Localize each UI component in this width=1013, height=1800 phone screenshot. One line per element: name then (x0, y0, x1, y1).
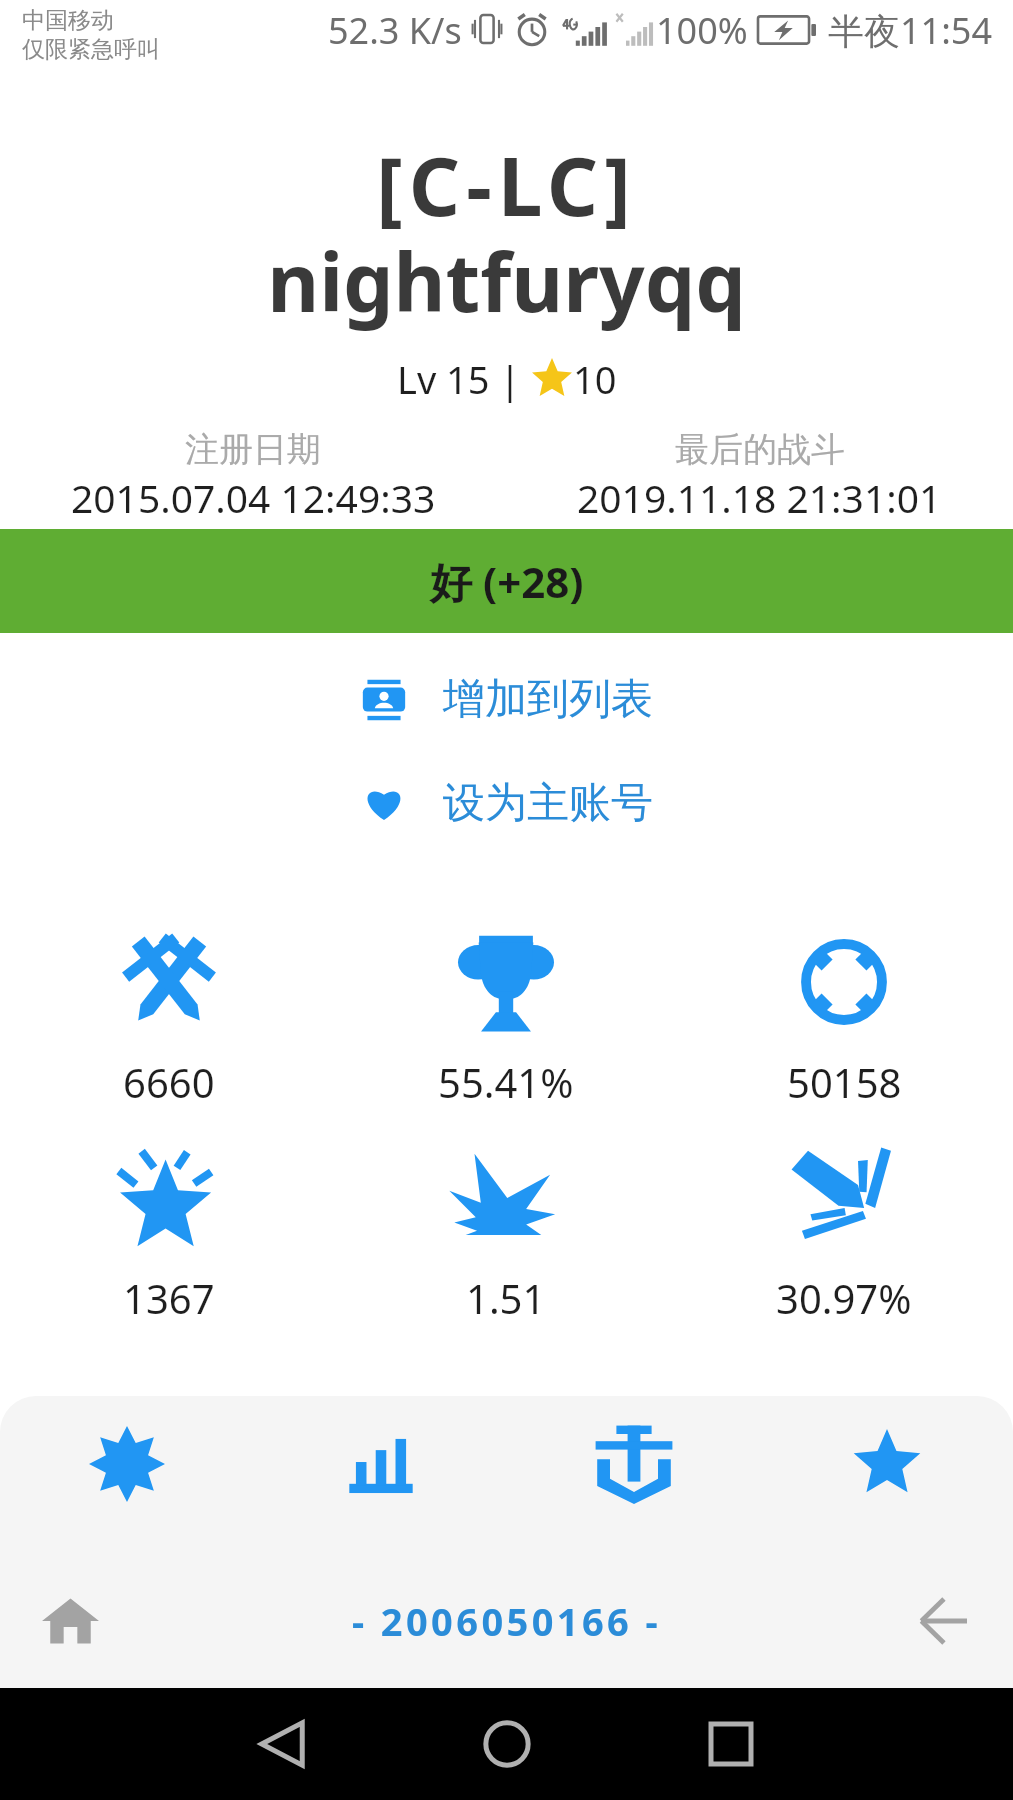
button[interactable]: Home (462, 1699, 552, 1789)
staticText: 10 (573, 353, 617, 405)
staticText: [C-LC] (0, 130, 1013, 239)
staticText: 仅限紧急呼叫 (22, 35, 160, 64)
button[interactable]: Recents (686, 1699, 776, 1789)
button[interactable]: Back (237, 1699, 327, 1789)
staticText: 52.3 K/s (328, 6, 462, 55)
button[interactable]: Home (0, 1554, 140, 1688)
staticText: nightfuryqq (0, 226, 1013, 335)
staticText: 注册日期 (185, 428, 321, 471)
staticText: 2019.11.18 21:31:01 (577, 471, 942, 524)
staticText: 55.41% (438, 1055, 574, 1109)
staticText: 最后的战斗 (675, 428, 845, 471)
staticText: 6660 (123, 1055, 215, 1109)
button[interactable]: Back (873, 1554, 1013, 1688)
staticText: - 2006050166 - (352, 1595, 662, 1647)
staticText: 1367 (123, 1271, 215, 1325)
staticText: Lv 15 | (397, 353, 531, 405)
staticText: 设为主账号 (443, 777, 653, 830)
staticText: 100% (656, 6, 748, 55)
button[interactable]: Ships (507, 1396, 760, 1532)
staticText: 30.97% (776, 1271, 912, 1325)
button[interactable]: Overview (0, 1396, 254, 1532)
button[interactable]: 增加到列表 (0, 665, 1013, 734)
button[interactable]: 设为主账号 (0, 769, 1013, 838)
button[interactable]: Statistics (254, 1396, 507, 1532)
staticText: 2015.07.04 12:49:33 (71, 471, 436, 524)
staticText: 50158 (787, 1055, 902, 1109)
staticText: 1.51 (466, 1271, 546, 1325)
staticText: 增加到列表 (443, 673, 653, 726)
staticText: 好 (+28) (430, 553, 584, 610)
button[interactable]: Favourites (760, 1396, 1013, 1532)
staticText: 中国移动 (22, 6, 114, 35)
button[interactable]: 好 (+28) (0, 529, 1013, 633)
staticText: 半夜11:54 (828, 6, 993, 55)
